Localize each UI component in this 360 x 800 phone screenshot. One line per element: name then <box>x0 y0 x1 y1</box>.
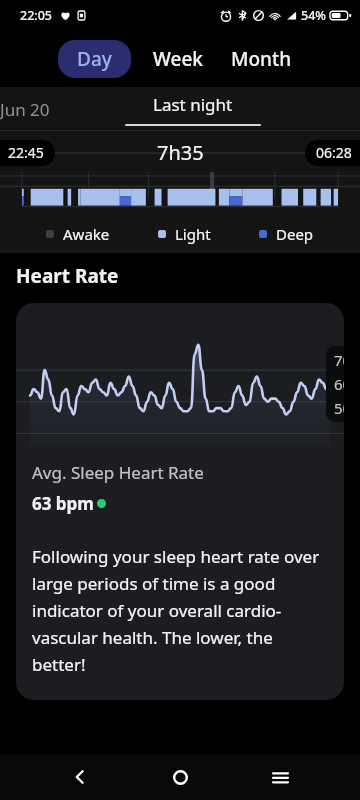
staticText: 54% <box>301 7 326 24</box>
staticText: 22:05 <box>20 7 53 24</box>
staticText: 22:45 <box>8 143 44 162</box>
staticText: Heart Rate <box>16 263 119 289</box>
staticText: Awake <box>63 224 110 244</box>
staticText: 63 bpm <box>32 492 94 515</box>
staticText: 60 <box>334 374 344 394</box>
staticText: Avg. Sleep Heart Rate <box>32 461 204 484</box>
button[interactable]: Back <box>60 757 100 797</box>
button[interactable]: Last night <box>125 93 261 126</box>
staticText: Light <box>175 224 211 244</box>
staticText: Deep <box>276 224 314 244</box>
button[interactable]: Jun 20 <box>0 98 58 121</box>
staticText: 7h35 <box>157 139 204 166</box>
button[interactable]: Week <box>143 40 213 78</box>
staticText: Day <box>77 46 112 72</box>
staticText: 70 <box>334 350 344 370</box>
staticText: Last night <box>153 93 233 116</box>
button[interactable]: Home <box>160 757 200 797</box>
button[interactable]: 70 <box>16 303 344 700</box>
staticText: Month <box>231 46 292 72</box>
staticText: Following your sleep heart rate over lar… <box>32 545 330 676</box>
staticText: Week <box>153 46 203 72</box>
button[interactable]: Month <box>221 40 302 78</box>
staticText: 50 <box>334 398 344 418</box>
button[interactable]: Recent apps <box>260 757 300 797</box>
staticText: 06:28 <box>316 143 352 162</box>
button[interactable]: Day <box>58 40 131 78</box>
